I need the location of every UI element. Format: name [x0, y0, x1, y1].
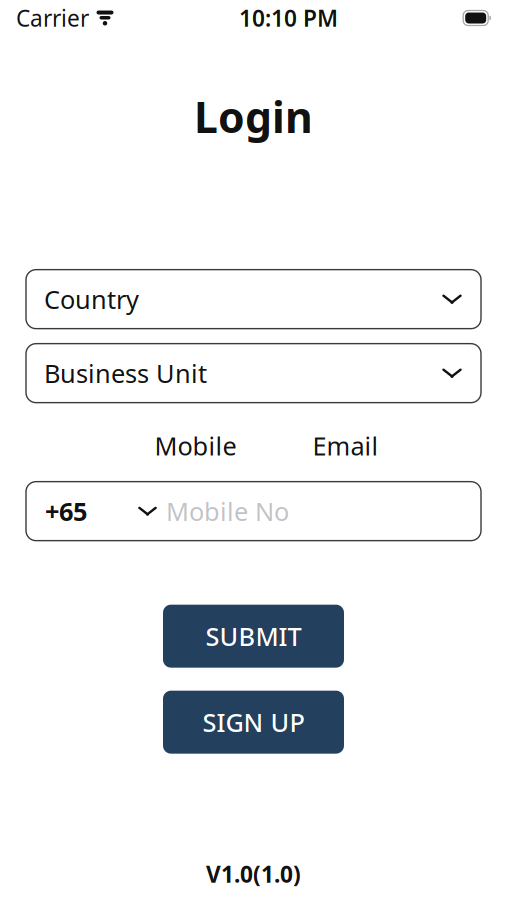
button[interactable]: SUBMIT [163, 605, 344, 668]
button[interactable]: Country [26, 270, 481, 329]
staticText: SUBMIT [205, 619, 301, 653]
button[interactable]: +65 [26, 484, 166, 539]
button[interactable]: Business Unit [26, 344, 481, 403]
staticText: Business Unit [44, 356, 207, 390]
staticText: SIGN UP [202, 705, 304, 739]
staticText: +65 [45, 494, 87, 528]
staticText: Email [312, 429, 378, 462]
button[interactable]: SIGN UP [163, 691, 344, 754]
staticText: Login [194, 88, 313, 145]
staticText: Carrier [16, 3, 89, 33]
button[interactable]: Email [270, 431, 420, 461]
staticText: Mobile [154, 429, 236, 462]
staticText: Country [44, 282, 139, 316]
staticText: Mobile No [166, 494, 289, 528]
button[interactable]: Mobile [120, 431, 270, 461]
staticText: V1.0(1.0) [206, 859, 301, 889]
staticText: 10:10 PM [239, 3, 338, 33]
